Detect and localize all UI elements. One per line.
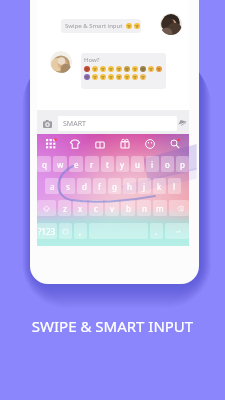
button[interactable]: Enter — [165, 223, 189, 239]
button[interactable]: z — [58, 200, 71, 216]
staticText: c — [94, 203, 98, 214]
button[interactable]: Backspace — [169, 200, 189, 216]
button[interactable]: t — [101, 156, 114, 172]
button[interactable]: w — [53, 156, 67, 172]
staticText: f — [98, 181, 101, 192]
button[interactable]: c — [89, 200, 103, 216]
button[interactable]: y — [116, 156, 129, 172]
button[interactable]: Search — [162, 134, 187, 154]
button[interactable]: Send — [178, 119, 187, 128]
staticText: n — [142, 203, 147, 214]
button[interactable]: m — [153, 200, 167, 216]
staticText: e — [74, 159, 79, 170]
button[interactable]: s — [61, 178, 75, 194]
staticText: SMART — [63, 119, 86, 129]
button[interactable]: Emoji art — [112, 134, 137, 154]
staticText: u — [135, 159, 140, 170]
button[interactable]: f — [93, 178, 106, 194]
button[interactable]: q — [37, 156, 51, 172]
button[interactable]: . — [150, 223, 163, 239]
staticText: i — [151, 159, 154, 170]
button[interactable]: Keyboard — [39, 134, 63, 154]
button[interactable]: x — [73, 200, 87, 216]
staticText: l — [173, 181, 176, 192]
button[interactable]: b — [121, 200, 135, 216]
button[interactable]: d — [77, 178, 91, 194]
button[interactable]: h — [123, 178, 136, 194]
staticText: z — [63, 203, 67, 214]
button[interactable]: p — [176, 156, 189, 172]
staticText: d — [82, 181, 87, 192]
button[interactable]: u — [131, 156, 144, 172]
staticText: o — [165, 159, 170, 170]
button[interactable]: Camera — [43, 120, 52, 128]
staticText: v — [110, 203, 115, 214]
staticText: k — [157, 181, 162, 192]
button[interactable]: Theme — [63, 134, 87, 154]
staticText: q — [42, 159, 47, 170]
staticText: How? — [84, 56, 100, 64]
button[interactable]: ?123 — [37, 223, 57, 239]
staticText: . — [155, 226, 158, 237]
button[interactable]: j — [138, 178, 151, 194]
staticText: SWIPE & SMART INPUT — [0, 316, 225, 336]
button[interactable]: Emoji — [59, 223, 72, 239]
staticText: t — [106, 159, 109, 170]
button[interactable]: e — [69, 156, 83, 172]
button[interactable]: r — [85, 156, 99, 172]
button[interactable]: Emoji — [137, 134, 162, 154]
button[interactable]: Sticker — [87, 134, 112, 154]
staticText: j — [143, 181, 146, 192]
staticText: p — [180, 159, 185, 170]
button[interactable]: i — [146, 156, 159, 172]
button[interactable]: Shift — [37, 200, 56, 216]
button[interactable]: a — [45, 178, 59, 194]
staticText: y — [120, 159, 125, 170]
staticText: b — [126, 203, 131, 214]
button[interactable]: o — [161, 156, 174, 172]
button[interactable]: v — [105, 200, 119, 216]
staticText: m — [156, 203, 164, 214]
button[interactable]: l — [168, 178, 181, 194]
button[interactable]: , — [74, 223, 87, 239]
staticText: , — [79, 226, 82, 237]
staticText: ?123 — [38, 226, 56, 237]
staticText: w — [57, 159, 64, 170]
button[interactable]: g — [108, 178, 121, 194]
button[interactable]: k — [153, 178, 166, 194]
staticText: x — [78, 203, 83, 214]
button[interactable]: n — [137, 200, 151, 216]
staticText: r — [90, 159, 94, 170]
staticText: Swipe & Smart input — [65, 22, 123, 30]
staticText: h — [127, 181, 132, 192]
staticText: s — [66, 181, 70, 192]
staticText: a — [50, 181, 55, 192]
staticText: g — [112, 181, 117, 192]
